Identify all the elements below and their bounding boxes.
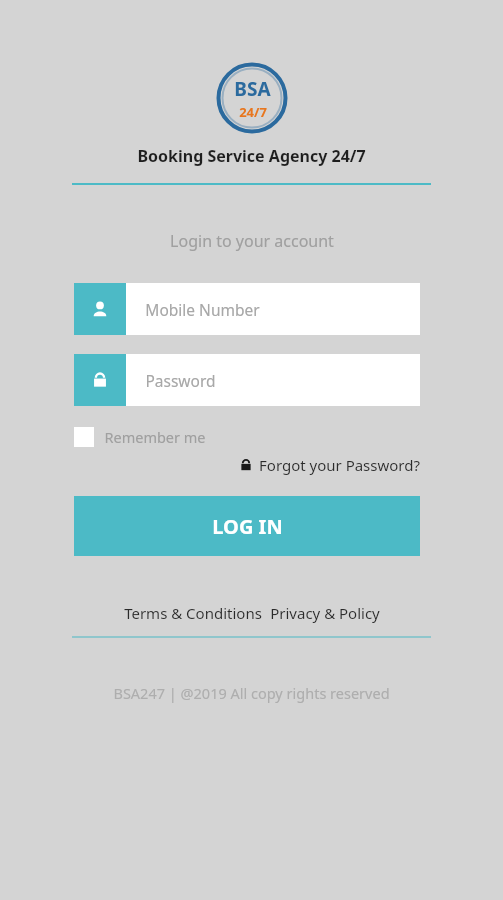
staticText: Mobile Number — [145, 299, 260, 320]
staticText: 24/7 — [239, 103, 267, 121]
button[interactable]: Remember me — [74, 427, 206, 447]
staticText: Terms & Conditions — [124, 603, 262, 623]
button[interactable]: Password — [74, 354, 420, 406]
staticText: Login to your account — [170, 230, 334, 252]
button[interactable]: Forgot your Password? — [239, 455, 420, 475]
button[interactable]: Terms & Conditions — [124, 603, 262, 623]
staticText: Privacy & Policy — [270, 603, 380, 623]
staticText: Booking Service Agency 24/7 — [137, 145, 366, 167]
button[interactable]: LOG IN — [74, 496, 420, 556]
button[interactable]: Privacy & Policy — [270, 603, 380, 623]
staticText: LOG IN — [212, 513, 283, 540]
button[interactable]: User — [74, 283, 420, 335]
staticText: BSA — [234, 76, 271, 102]
staticText: Forgot your Password? — [259, 455, 420, 475]
other: User — [74, 283, 126, 335]
other: Password — [74, 354, 126, 406]
staticText: Password — [145, 370, 216, 391]
staticText: BSA247 | @2019 All copy rights reserved — [113, 683, 390, 703]
staticText: Remember me — [104, 427, 206, 447]
